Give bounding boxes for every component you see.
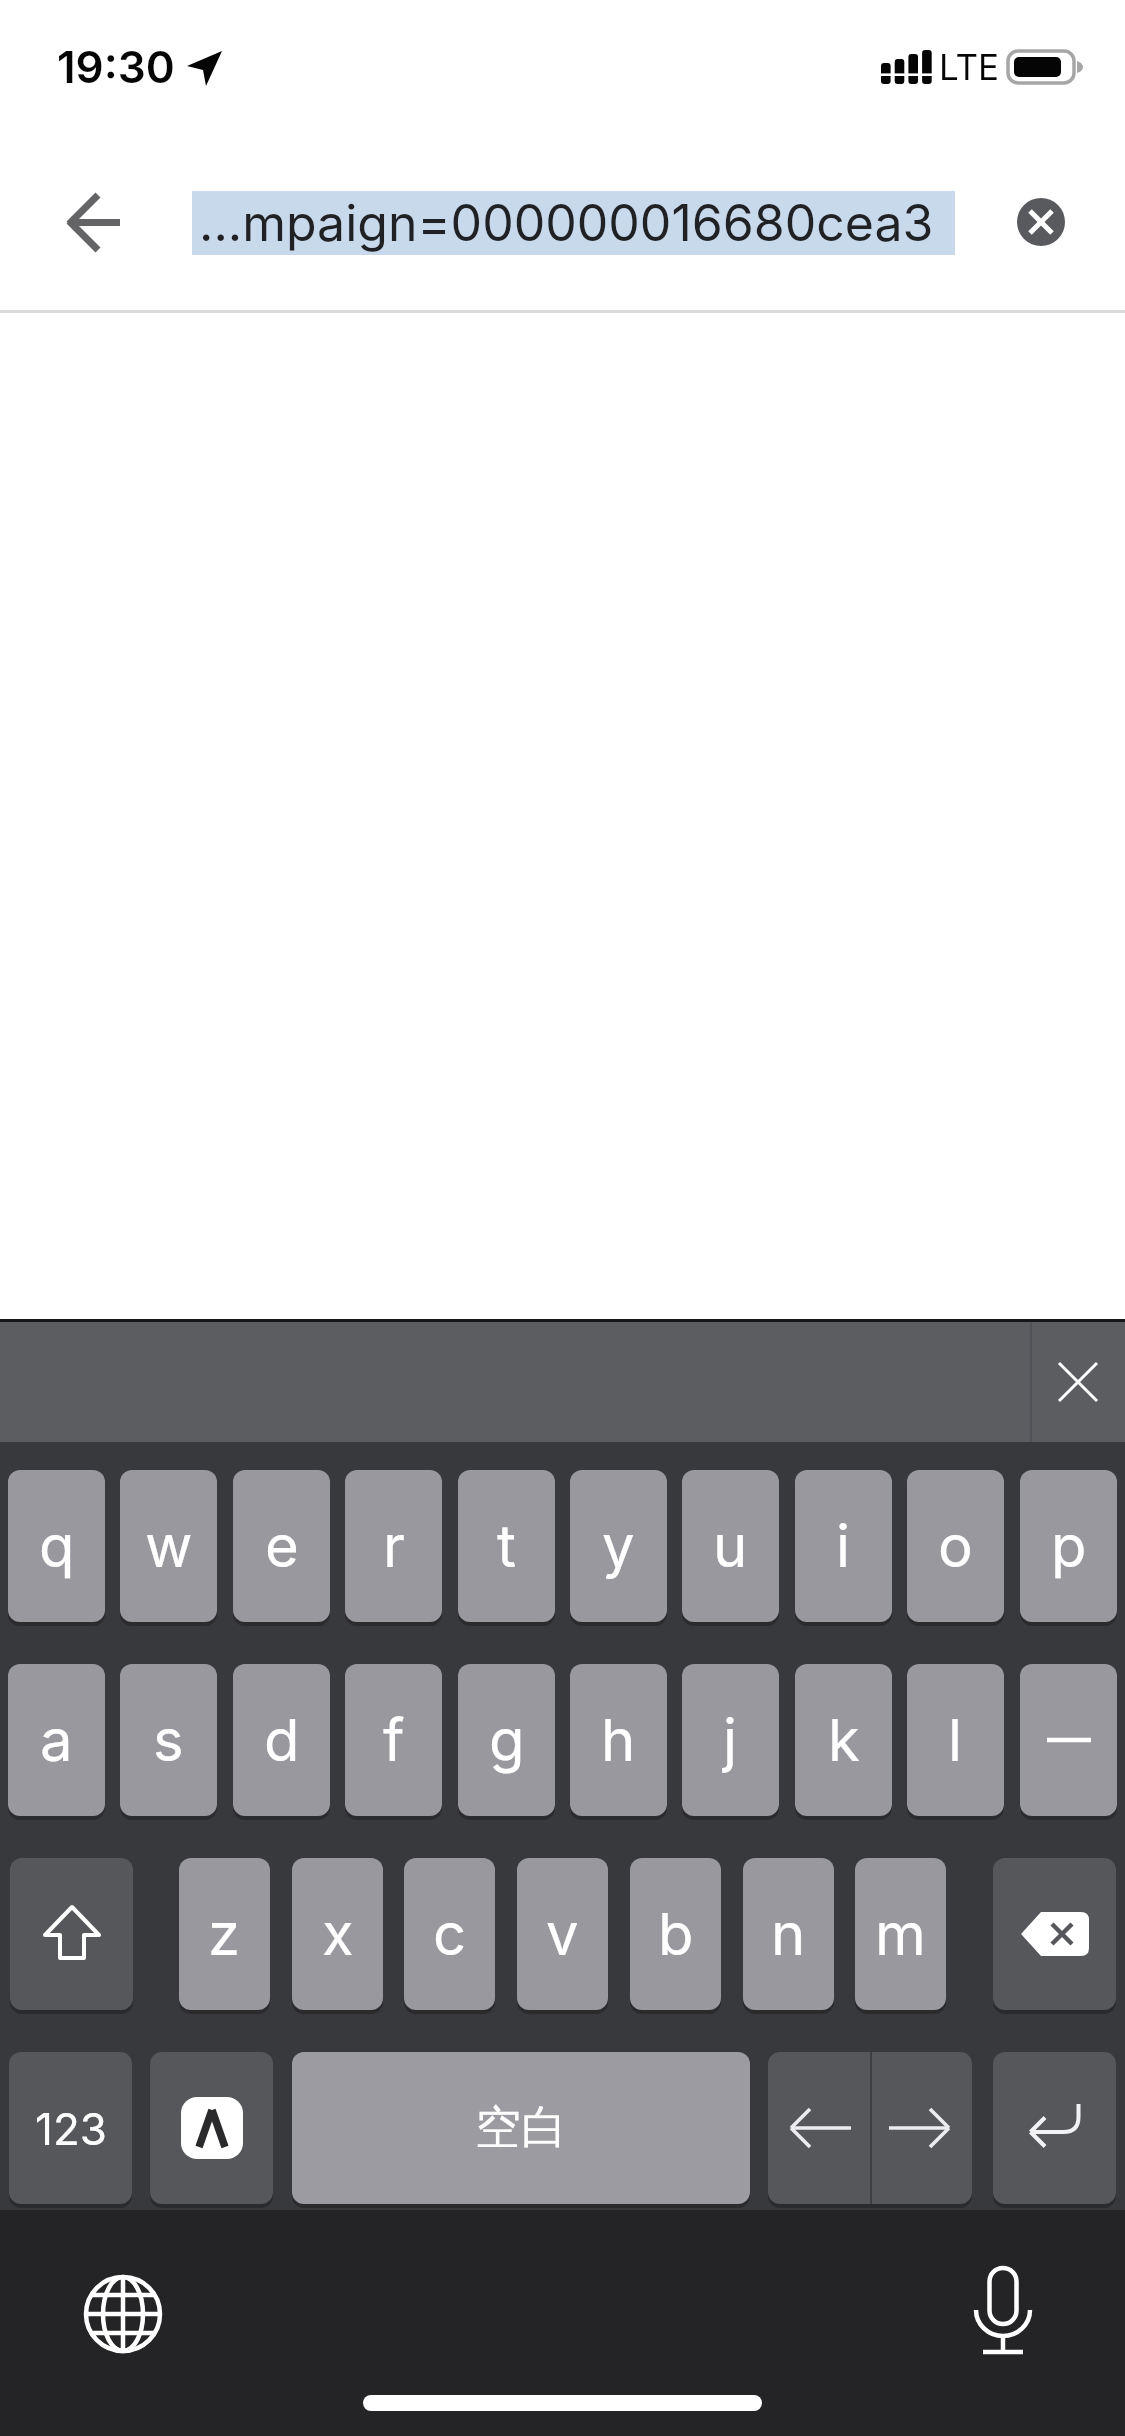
button[interactable]: b <box>630 1858 721 2010</box>
staticText: e <box>265 1511 299 1581</box>
staticText: d <box>264 1705 300 1775</box>
staticText: LTE <box>939 46 1000 88</box>
staticText: a <box>40 1705 73 1775</box>
button[interactable]: t <box>458 1470 555 1622</box>
button[interactable] <box>82 2273 164 2355</box>
button[interactable]: f <box>345 1664 442 1816</box>
button[interactable]: c <box>404 1858 495 2010</box>
staticText: s <box>153 1705 184 1775</box>
button[interactable]: l <box>907 1664 1004 1816</box>
button[interactable]: m <box>855 1858 946 2010</box>
staticText: r <box>383 1511 405 1581</box>
button[interactable] <box>1020 1664 1117 1816</box>
button[interactable] <box>965 2258 1041 2362</box>
button[interactable]: e <box>233 1470 330 1622</box>
button[interactable]: n <box>743 1858 834 2010</box>
staticText: ...mpaign=000000016680cea3 <box>199 193 934 253</box>
button[interactable]: v <box>517 1858 608 2010</box>
staticText: z <box>208 1899 241 1969</box>
button[interactable]: x <box>292 1858 383 2010</box>
staticText: f <box>383 1705 405 1775</box>
button[interactable]: w <box>120 1470 217 1622</box>
button[interactable]: p <box>1020 1470 1117 1622</box>
button[interactable]: h <box>570 1664 667 1816</box>
button[interactable]: 123 <box>9 2052 132 2204</box>
staticText: l <box>948 1705 963 1775</box>
staticText: g <box>489 1705 525 1775</box>
button[interactable]: g <box>458 1664 555 1816</box>
staticText: 123 <box>35 2102 107 2155</box>
button[interactable]: 空白 <box>292 2052 750 2204</box>
staticText: m <box>875 1899 926 1969</box>
staticText: y <box>602 1511 635 1581</box>
button[interactable]: i <box>795 1470 892 1622</box>
button[interactable]: r <box>345 1470 442 1622</box>
staticText: i <box>836 1511 851 1581</box>
staticText: t <box>497 1511 516 1581</box>
staticText: u <box>713 1511 748 1581</box>
button[interactable] <box>1032 1322 1125 1442</box>
button[interactable]: a <box>8 1664 105 1816</box>
button[interactable] <box>993 1858 1116 2010</box>
button[interactable]: d <box>233 1664 330 1816</box>
button[interactable]: z <box>179 1858 270 2010</box>
button[interactable] <box>993 2052 1116 2204</box>
button[interactable]: k <box>795 1664 892 1816</box>
staticText: 19:30 <box>57 40 175 93</box>
button[interactable] <box>150 2052 273 2204</box>
staticText: j <box>723 1705 738 1775</box>
staticText: q <box>39 1511 75 1581</box>
staticText: b <box>658 1899 694 1969</box>
staticText: p <box>1051 1511 1087 1581</box>
staticText: h <box>601 1705 636 1775</box>
button[interactable] <box>768 2052 972 2204</box>
button[interactable] <box>1017 198 1065 246</box>
button[interactable] <box>50 177 140 267</box>
button[interactable]: q <box>8 1470 105 1622</box>
staticText: 空白 <box>475 2099 567 2157</box>
staticText: x <box>322 1899 354 1969</box>
button[interactable] <box>10 1858 133 2010</box>
button[interactable]: j <box>682 1664 779 1816</box>
button[interactable]: y <box>570 1470 667 1622</box>
staticText: o <box>938 1511 973 1581</box>
button[interactable]: s <box>120 1664 217 1816</box>
staticText: v <box>546 1899 579 1969</box>
button[interactable]: o <box>907 1470 1004 1622</box>
button[interactable]: u <box>682 1470 779 1622</box>
staticText: c <box>433 1899 467 1969</box>
staticText: w <box>145 1511 193 1581</box>
staticText: n <box>771 1899 806 1969</box>
staticText: k <box>828 1705 860 1775</box>
